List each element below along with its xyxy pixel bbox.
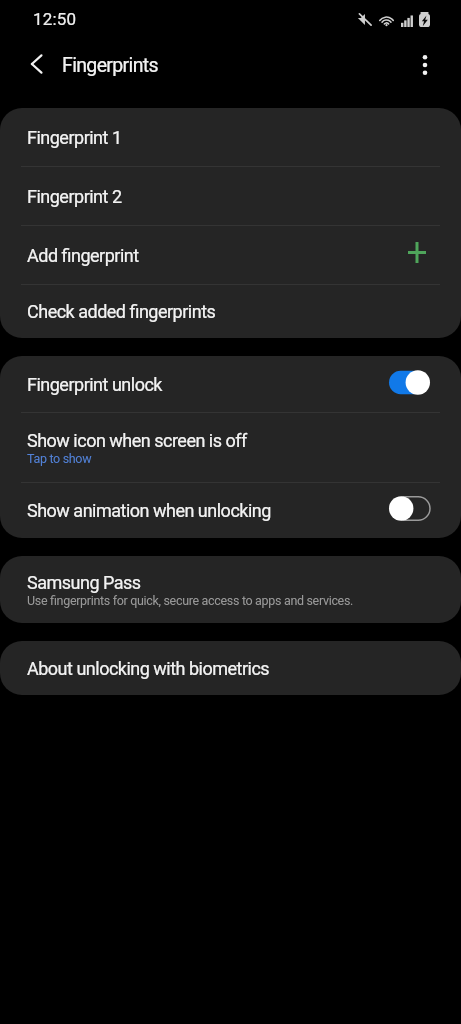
staticText: Fingerprints [62,54,158,77]
button[interactable]: About unlocking with biometrics [0,641,461,695]
staticText: 12:50 [33,9,77,29]
button[interactable]: Fingerprint 2 [0,167,461,225]
button[interactable]: Show animation when unlocking [0,483,461,538]
staticText: Add fingerprint [27,245,139,266]
button[interactable]: On [389,370,430,395]
button[interactable]: Check added fingerprints [0,285,461,338]
button[interactable]: Navigate up [18,47,54,83]
button[interactable]: Show icon when screen is off [0,413,461,482]
staticText: Show icon when screen is off [27,430,247,451]
staticText: Fingerprint unlock [27,374,162,395]
staticText: Use fingerprints for quick, secure acces… [27,593,354,608]
staticText: Fingerprint 1 [27,127,122,148]
staticText: Check added fingerprints [27,301,216,322]
staticText: Show animation when unlocking [27,500,271,521]
button[interactable]: Add fingerprint [403,238,431,266]
staticText: Tap to show [27,451,92,466]
button[interactable]: Samsung Pass [0,556,461,623]
button[interactable]: Fingerprint 1 [0,108,461,166]
staticText: Fingerprint 2 [27,186,122,207]
staticText: About unlocking with biometrics [27,658,270,679]
button[interactable]: Add fingerprint [0,226,461,284]
button[interactable]: Off [389,496,430,521]
staticText: Samsung Pass [27,572,141,593]
button[interactable]: More options [407,47,443,83]
button[interactable]: Fingerprint unlock [0,356,461,412]
